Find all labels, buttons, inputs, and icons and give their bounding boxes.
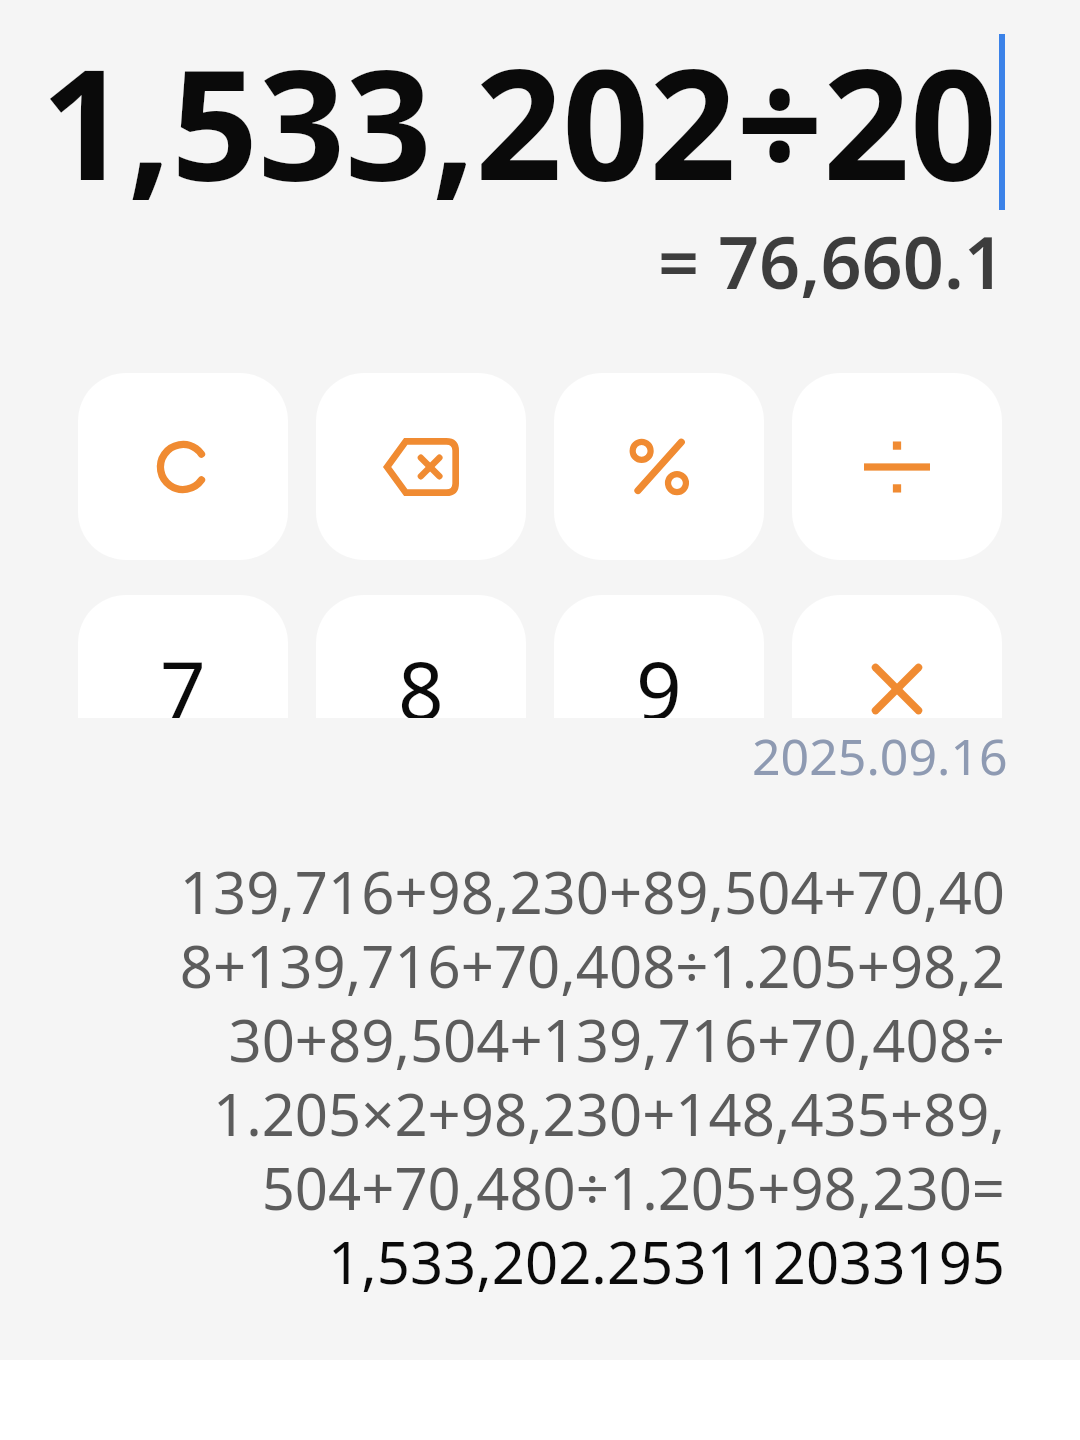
button[interactable]: 9 <box>554 595 764 718</box>
button[interactable]: Multiply <box>792 595 1002 718</box>
staticText: 8+139,716+70,408÷1.205+98,2 <box>179 926 1005 1000</box>
staticText: 2025.09.16 <box>752 722 1008 790</box>
staticText: 1,533,202÷20 <box>40 18 997 225</box>
staticText: 8 <box>398 634 444 718</box>
button[interactable]: 8 <box>316 595 526 718</box>
button[interactable]: Divide <box>792 373 1002 560</box>
staticText: 30+89,504+139,716+70,408÷ <box>228 1000 1005 1074</box>
button[interactable]: Clear <box>78 373 288 560</box>
button[interactable]: 7 <box>78 595 288 718</box>
button[interactable]: Backspace <box>316 373 526 560</box>
staticText: 9 <box>636 634 682 718</box>
button[interactable]: Percent <box>554 373 764 560</box>
staticText: 504+70,480÷1.205+98,230= <box>261 1148 1005 1222</box>
staticText: 139,716+98,230+89,504+70,40 <box>179 852 1005 926</box>
staticText: = 76,660.1 <box>658 212 1005 310</box>
staticText: 1.205×2+98,230+148,435+89, <box>212 1074 1005 1148</box>
staticText: 7 <box>160 634 206 718</box>
staticText: 1,533,202.253112033195 <box>328 1222 1005 1296</box>
